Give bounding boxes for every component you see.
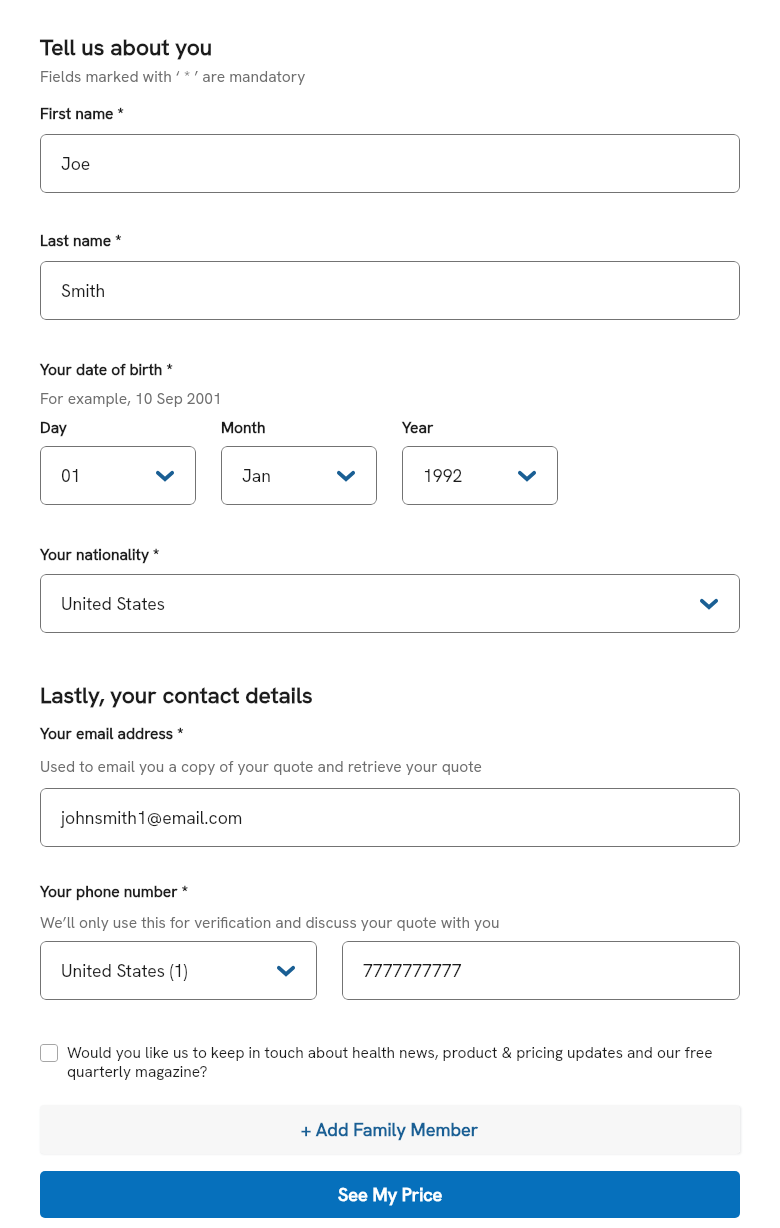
staticText: 7777777777 bbox=[363, 959, 462, 982]
staticText: 01 bbox=[61, 464, 81, 487]
button[interactable]: Joe bbox=[40, 134, 740, 193]
staticText: For example, 10 Sep 2001 bbox=[40, 388, 222, 408]
button[interactable]: + Add Family Member bbox=[40, 1105, 740, 1154]
staticText: Tell us about you bbox=[40, 32, 213, 62]
button[interactable]: Would you like us to keep in touch about… bbox=[40, 1042, 740, 1082]
button[interactable]: United States (1) bbox=[40, 941, 317, 1000]
other: Open Jan list bbox=[335, 465, 357, 487]
staticText: Fields marked with ‘ * ’ are mandatory bbox=[40, 66, 306, 86]
staticText: Would you like us to keep in touch about… bbox=[67, 1042, 740, 1082]
staticText: + Add Family Member bbox=[301, 1118, 479, 1142]
staticText: Used to email you a copy of your quote a… bbox=[40, 756, 482, 776]
staticText: Month bbox=[221, 417, 266, 437]
staticText: Your email address * bbox=[40, 723, 184, 743]
button[interactable]: See My Price bbox=[40, 1171, 740, 1218]
staticText: See My Price bbox=[338, 1183, 443, 1207]
staticText: Your nationality * bbox=[40, 544, 160, 564]
button[interactable]: johnsmith1@email.com bbox=[40, 788, 740, 847]
staticText: 1992 bbox=[423, 464, 463, 487]
staticText: Joe bbox=[61, 152, 91, 175]
staticText: Your date of birth * bbox=[40, 359, 173, 379]
staticText: Lastly, your contact details bbox=[40, 680, 313, 710]
staticText: United States bbox=[61, 592, 166, 615]
button[interactable]: 7777777777 bbox=[342, 941, 740, 1000]
staticText: First name * bbox=[40, 103, 124, 123]
other: Open 01 list bbox=[154, 465, 176, 487]
staticText: Day bbox=[40, 417, 67, 437]
staticText: Your phone number * bbox=[40, 881, 188, 901]
staticText: Year bbox=[402, 417, 434, 437]
staticText: johnsmith1@email.com bbox=[61, 806, 243, 829]
staticText: Last name * bbox=[40, 230, 122, 250]
other: Open United States (1) list bbox=[275, 960, 297, 982]
staticText: United States (1) bbox=[61, 959, 188, 982]
button[interactable]: 1992 bbox=[402, 446, 558, 505]
staticText: We’ll only use this for verification and… bbox=[40, 912, 500, 932]
button[interactable]: United States bbox=[40, 574, 740, 633]
button[interactable]: Smith bbox=[40, 261, 740, 320]
other: Open United States list bbox=[698, 593, 720, 615]
button[interactable]: 01 bbox=[40, 446, 196, 505]
staticText: Smith bbox=[61, 279, 106, 302]
button[interactable]: Jan bbox=[221, 446, 377, 505]
staticText: Jan bbox=[242, 464, 271, 487]
other: Open 1992 list bbox=[516, 465, 538, 487]
